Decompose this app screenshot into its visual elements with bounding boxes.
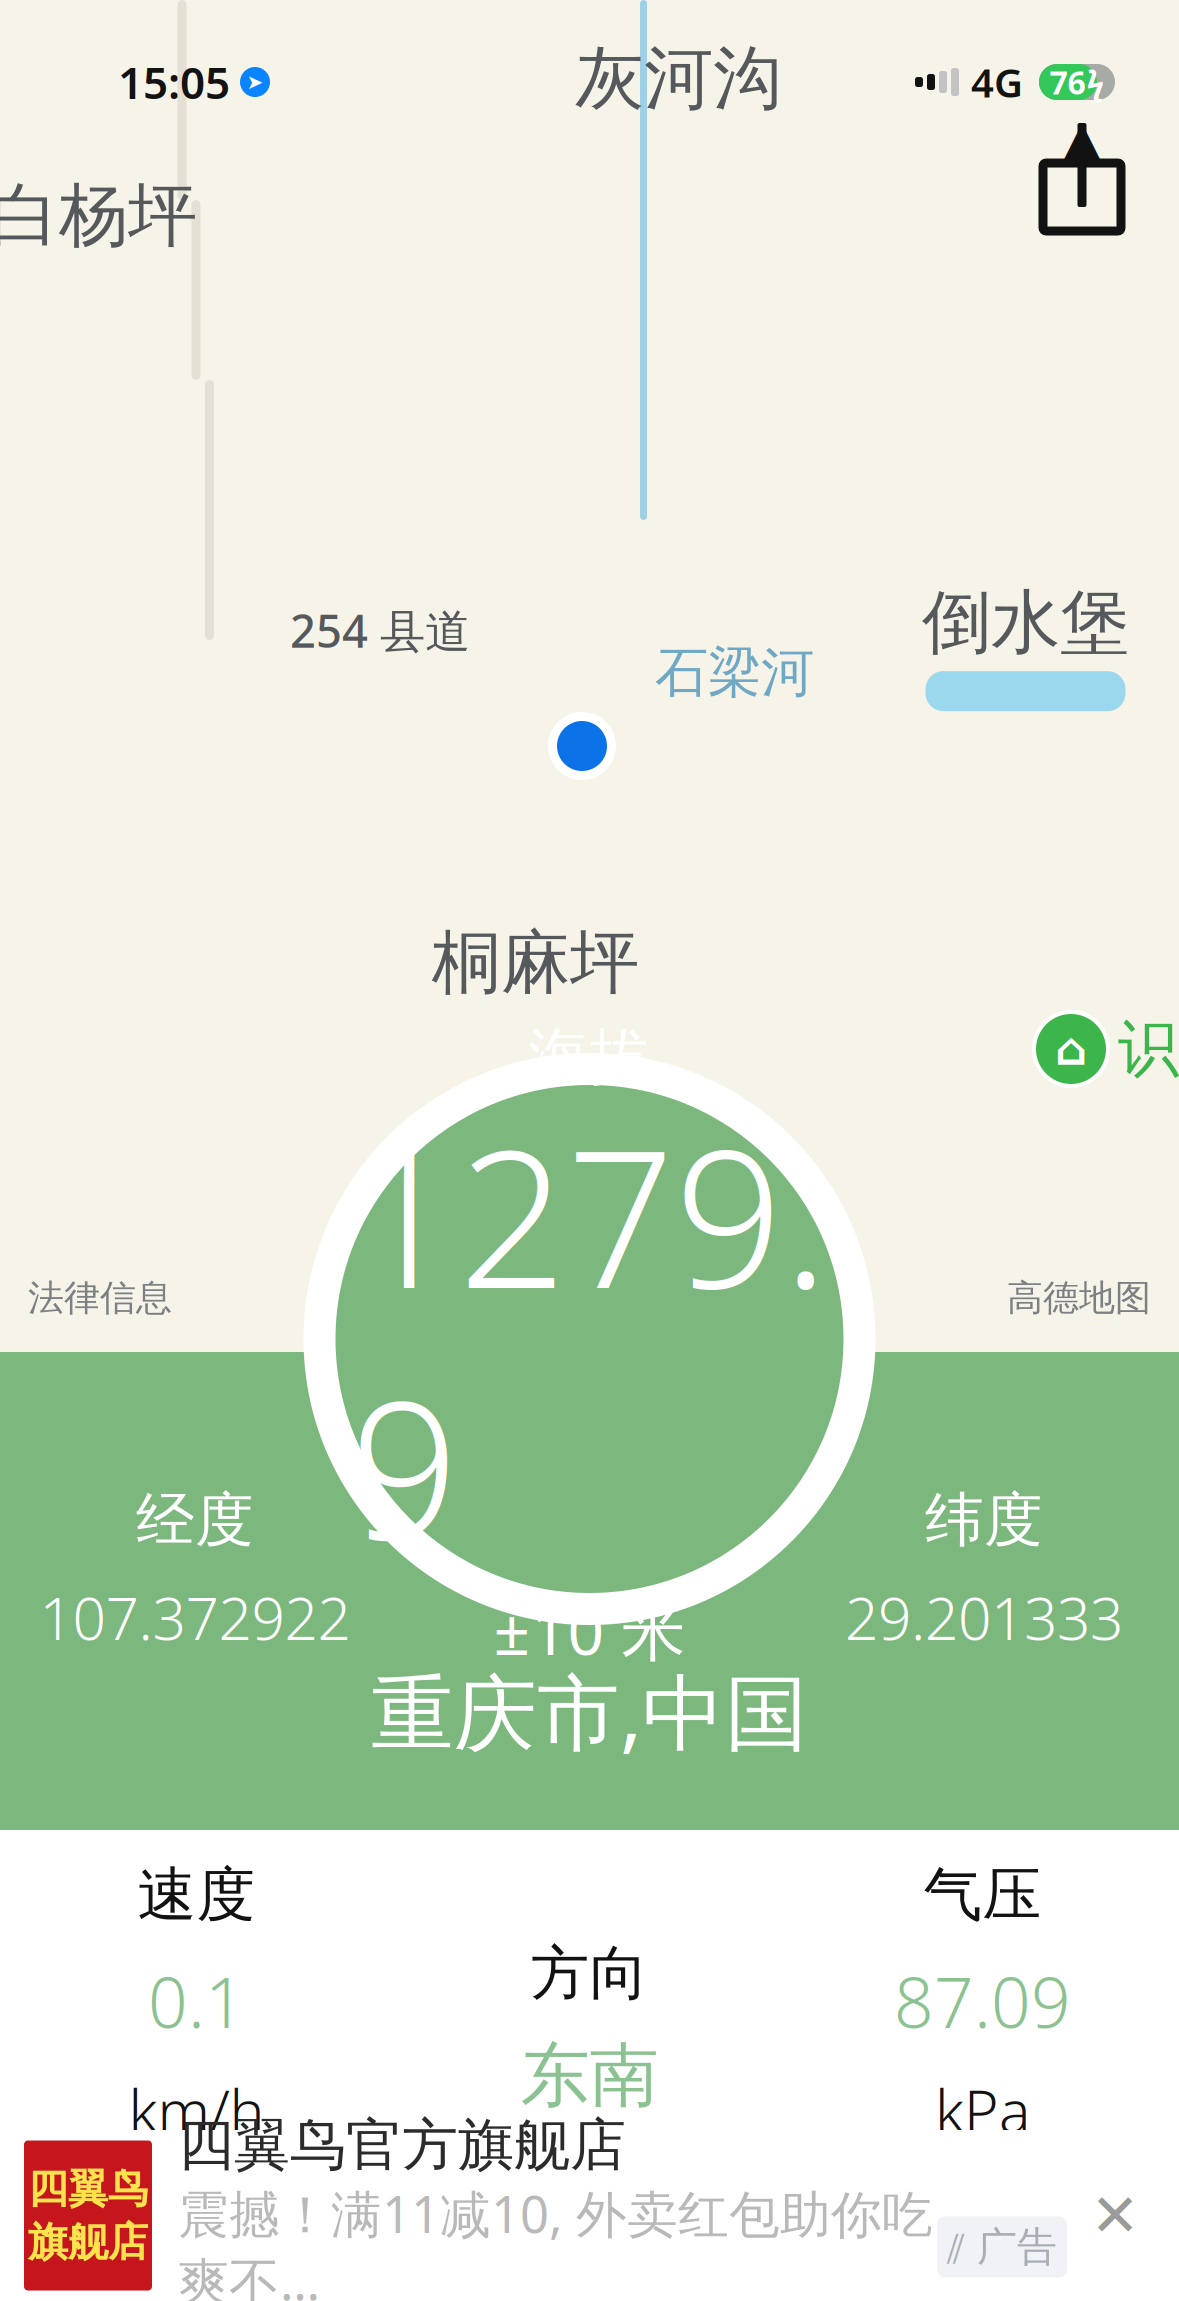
staticText: 经度: [136, 1484, 254, 1556]
staticText: 1279.9: [350, 1089, 828, 1592]
staticText: 震撼！满11减10, 外卖红包助你吃爽不…: [178, 2180, 933, 2301]
staticText: 桐麻坪: [432, 920, 639, 1005]
staticText: 海拔: [528, 1019, 650, 1095]
staticText: ⌂: [1055, 1023, 1087, 1075]
staticText: ➤: [246, 71, 263, 93]
staticText: ▲: [1061, 109, 1102, 169]
staticText: 254 县道: [290, 600, 470, 660]
staticText: ±10 米: [493, 1588, 685, 1673]
staticText: 旗舰店: [28, 2217, 148, 2267]
staticText: 15:05: [118, 53, 230, 111]
staticText: 白杨坪: [0, 173, 197, 258]
staticText: ⫽ 广告: [947, 2222, 1057, 2271]
button[interactable]: 四翼鸟: [0, 2130, 1179, 2301]
staticText: 倒水堡: [922, 580, 1129, 665]
staticText: 4G: [971, 55, 1023, 108]
staticText: 灰河沟: [575, 36, 782, 121]
staticText: 识: [1118, 1011, 1179, 1087]
staticText: 107.372922: [39, 1578, 350, 1656]
staticText: 高德地图: [1007, 1276, 1151, 1320]
staticText: 四翼鸟: [28, 2164, 148, 2213]
staticText: ✕: [1090, 2182, 1139, 2249]
staticText: 76: [1049, 61, 1085, 103]
staticText: 纬度: [925, 1484, 1043, 1556]
staticText: ϟ: [1086, 61, 1104, 103]
staticText: 速度: [137, 1859, 255, 1931]
staticText: 法律信息: [28, 1276, 172, 1320]
button[interactable]: Share: [1027, 118, 1137, 238]
staticText: 0.1: [148, 1955, 245, 2047]
staticText: 重庆市,中国: [371, 1656, 808, 1766]
staticText: 石梁河: [655, 640, 814, 705]
staticText: 87.09: [894, 1955, 1071, 2047]
staticText: 四翼鸟官方旗舰店: [178, 2111, 626, 2180]
staticText: 气压: [923, 1859, 1041, 1931]
button[interactable]: Close ad: [1067, 2167, 1163, 2263]
staticText: km/h: [128, 2071, 264, 2149]
staticText: 29.201333: [845, 1578, 1123, 1656]
staticText: 东南: [520, 2033, 658, 2119]
staticText: 方向: [530, 1937, 648, 2009]
staticText: kPa: [935, 2071, 1030, 2149]
